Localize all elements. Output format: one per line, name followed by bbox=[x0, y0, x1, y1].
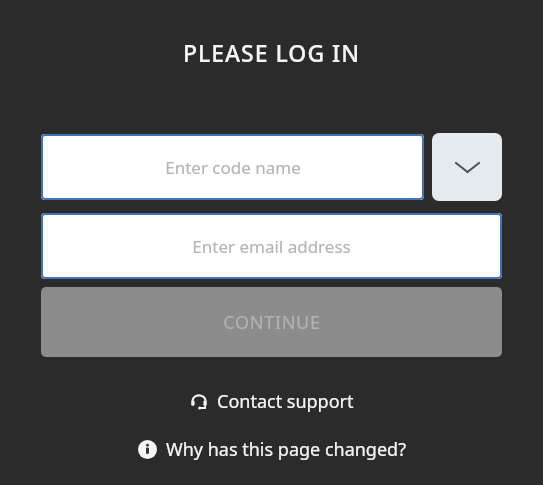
staticText: Enter email address bbox=[192, 235, 351, 258]
button[interactable]: Contact support bbox=[0, 384, 543, 419]
button[interactable]: CONTINUE bbox=[41, 287, 502, 357]
staticText: Why has this page changed? bbox=[166, 437, 406, 462]
staticText: PLEASE LOG IN bbox=[0, 37, 543, 68]
button[interactable]: Enter code name bbox=[41, 134, 424, 200]
button[interactable]: Show code name options bbox=[432, 133, 502, 201]
button[interactable]: Enter email address bbox=[41, 213, 502, 279]
button[interactable]: Why has this page changed? bbox=[0, 432, 543, 467]
staticText: Contact support bbox=[217, 389, 354, 414]
staticText: CONTINUE bbox=[223, 310, 321, 335]
staticText: Enter code name bbox=[165, 156, 301, 179]
